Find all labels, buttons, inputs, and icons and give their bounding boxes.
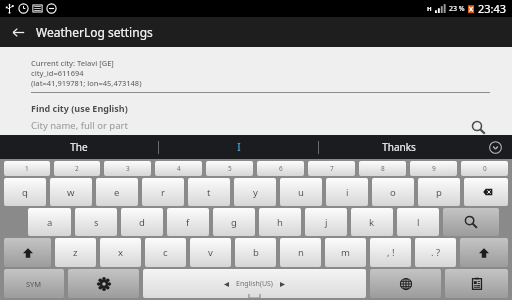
button[interactable]: e bbox=[96, 178, 138, 206]
staticText: k bbox=[369, 216, 375, 229]
staticText: 2 bbox=[75, 164, 79, 173]
button[interactable]: m bbox=[325, 238, 366, 267]
button[interactable]: Settings bbox=[68, 269, 139, 298]
button[interactable]: h bbox=[259, 208, 301, 236]
staticText: H bbox=[427, 5, 432, 13]
button[interactable]: 7 bbox=[308, 161, 355, 176]
staticText: 4 bbox=[177, 164, 181, 173]
staticText: 23 % bbox=[449, 4, 465, 14]
button[interactable]: . ? bbox=[415, 238, 456, 267]
button[interactable]: Back bbox=[0, 17, 36, 47]
button[interactable]: q bbox=[4, 178, 46, 206]
button[interactable]: w bbox=[50, 178, 92, 206]
staticText: 6 bbox=[279, 164, 283, 173]
staticText: q bbox=[22, 186, 28, 199]
button[interactable]: 4 bbox=[155, 161, 202, 176]
staticText: t bbox=[207, 186, 211, 199]
button[interactable]: r bbox=[142, 178, 184, 206]
staticText: s bbox=[94, 216, 99, 229]
button[interactable]: Space bbox=[143, 269, 366, 298]
button[interactable]: d bbox=[121, 208, 163, 236]
button[interactable]: More suggestions bbox=[478, 135, 512, 159]
staticText: Thanks bbox=[382, 140, 416, 154]
button[interactable]: l bbox=[397, 208, 439, 236]
staticText: SYM bbox=[26, 279, 42, 289]
button[interactable]: f bbox=[167, 208, 209, 236]
staticText: The bbox=[70, 140, 88, 154]
button[interactable]: p bbox=[418, 178, 460, 206]
staticText: , ! bbox=[387, 246, 395, 259]
staticText: a bbox=[47, 216, 53, 229]
button[interactable]: 2 bbox=[54, 161, 100, 176]
button[interactable]: Backspace bbox=[464, 178, 508, 206]
button[interactable]: t bbox=[188, 178, 230, 206]
button[interactable]: g bbox=[213, 208, 255, 236]
button[interactable]: v bbox=[190, 238, 231, 267]
staticText: e bbox=[114, 186, 120, 199]
button[interactable]: c bbox=[145, 238, 186, 267]
button[interactable]: 6 bbox=[257, 161, 304, 176]
staticText: city_id=611694 bbox=[31, 68, 84, 78]
button[interactable]: 9 bbox=[410, 161, 457, 176]
button[interactable]: i bbox=[326, 178, 368, 206]
button[interactable]: 0 bbox=[461, 161, 508, 176]
staticText: 0 bbox=[483, 164, 487, 173]
button[interactable]: b bbox=[235, 238, 276, 267]
staticText: r bbox=[161, 186, 165, 199]
button[interactable]: s bbox=[75, 208, 117, 236]
button[interactable]: 8 bbox=[359, 161, 406, 176]
staticText: m bbox=[341, 246, 350, 259]
staticText: c bbox=[163, 246, 168, 259]
button[interactable]: z bbox=[55, 238, 96, 267]
button[interactable]: Clipboard bbox=[445, 269, 508, 298]
staticText: d bbox=[139, 216, 145, 229]
staticText: l bbox=[417, 216, 420, 229]
staticText: City name, full or part bbox=[31, 119, 128, 132]
button[interactable]: 1 bbox=[4, 161, 50, 176]
button[interactable]: Search bbox=[466, 119, 490, 135]
button[interactable]: 5 bbox=[206, 161, 253, 176]
staticText: b bbox=[253, 246, 259, 259]
staticText: o bbox=[390, 186, 396, 199]
staticText: (lat=41,919781; lon=45,473148) bbox=[31, 78, 142, 88]
button[interactable]: y bbox=[234, 178, 276, 206]
staticText: f bbox=[186, 216, 190, 229]
button[interactable]: Thanks bbox=[319, 135, 478, 159]
staticText: u bbox=[298, 186, 304, 199]
button[interactable]: j bbox=[305, 208, 347, 236]
staticText: 23:43 bbox=[478, 1, 507, 16]
staticText: x bbox=[118, 246, 124, 259]
button[interactable]: x bbox=[100, 238, 141, 267]
button[interactable]: , ! bbox=[370, 238, 411, 267]
button[interactable]: The bbox=[0, 135, 158, 159]
staticText: z bbox=[73, 246, 78, 259]
staticText: g bbox=[231, 216, 237, 229]
staticText: p bbox=[436, 186, 442, 199]
staticText: h bbox=[277, 216, 283, 229]
button[interactable]: o bbox=[372, 178, 414, 206]
staticText: 9 bbox=[432, 164, 436, 173]
staticText: 1 bbox=[25, 164, 29, 173]
button[interactable]: Search bbox=[443, 208, 499, 236]
button[interactable]: 3 bbox=[104, 161, 151, 176]
staticText: j bbox=[325, 216, 328, 229]
button[interactable]: n bbox=[280, 238, 321, 267]
staticText: 5 bbox=[228, 164, 232, 173]
button[interactable]: Shift bbox=[4, 238, 51, 267]
button[interactable]: I bbox=[159, 135, 318, 159]
staticText: 3 bbox=[126, 164, 130, 173]
staticText: y bbox=[253, 186, 258, 199]
button[interactable]: Change language bbox=[370, 269, 441, 298]
staticText: WeatherLog settings bbox=[36, 24, 153, 40]
button[interactable]: City name, full or part bbox=[31, 119, 452, 135]
staticText: w bbox=[67, 186, 75, 199]
button[interactable]: u bbox=[280, 178, 322, 206]
staticText: n bbox=[298, 246, 304, 259]
staticText: i bbox=[346, 186, 349, 199]
button[interactable]: SYM bbox=[4, 269, 64, 298]
button[interactable]: Shift bbox=[460, 238, 508, 267]
button[interactable]: k bbox=[351, 208, 393, 236]
staticText: I bbox=[237, 140, 241, 154]
staticText: Find city (use English) bbox=[31, 102, 128, 114]
button[interactable]: a bbox=[28, 208, 71, 236]
